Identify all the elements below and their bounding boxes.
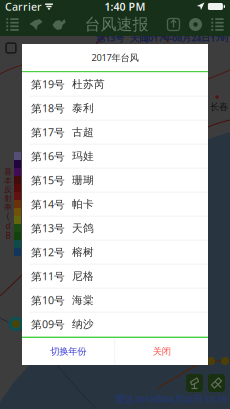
button[interactable]: 关闭 xyxy=(115,338,208,365)
staticText: ( xyxy=(7,211,9,222)
button[interactable]: 第11号 xyxy=(22,265,208,289)
staticText: 基 xyxy=(4,167,12,177)
staticText: 古超 xyxy=(72,126,94,139)
staticText: 1:40 PM xyxy=(104,0,145,14)
staticText: 珊瑚 xyxy=(72,174,94,187)
staticText: Carrier xyxy=(5,0,42,14)
button[interactable]: Typhoon xyxy=(188,17,203,32)
button[interactable]: 第17号 xyxy=(22,121,208,145)
staticText: 2017年08月24日17时 xyxy=(143,32,229,44)
staticText: 本 xyxy=(4,176,12,186)
staticText: 反 xyxy=(4,185,12,194)
staticText: 纳沙 xyxy=(72,318,94,331)
staticText: 第17号 xyxy=(31,125,65,139)
button[interactable]: 第09号 xyxy=(22,313,208,337)
button[interactable]: 切换年份 xyxy=(22,338,115,365)
button[interactable]: Radar xyxy=(186,374,203,392)
button[interactable]: List xyxy=(5,17,20,32)
staticText: 关闭 xyxy=(153,346,171,357)
button[interactable]: 第15号 xyxy=(22,169,208,193)
staticText: 第10号 xyxy=(31,293,65,307)
button[interactable]: Menu xyxy=(210,17,225,32)
staticText: 切换年份 xyxy=(50,346,86,357)
button[interactable]: Satellite xyxy=(208,374,225,392)
staticText: 第11号 xyxy=(31,269,65,283)
staticText: 第09号 xyxy=(31,317,65,331)
staticText: 2017年台风 xyxy=(91,51,138,64)
staticText: 天鸽 xyxy=(72,222,94,235)
staticText: 30米/小时 xyxy=(143,58,192,72)
button[interactable]: 第19号 xyxy=(22,73,208,97)
button[interactable]: Map xyxy=(51,17,67,32)
button[interactable]: 第14号 xyxy=(22,193,208,217)
staticText: d xyxy=(5,221,10,231)
staticText: 第13号 天鸽 xyxy=(96,32,148,44)
staticText: 射 xyxy=(4,193,12,203)
button[interactable]: 第18号 xyxy=(22,97,208,121)
staticText: 第15号 xyxy=(31,173,65,187)
staticText: 第19号 xyxy=(31,77,65,91)
staticText: 第18号 xyxy=(31,101,65,115)
staticText: 第13号 xyxy=(31,221,65,235)
button[interactable]: 第13号 xyxy=(22,217,208,241)
staticText: 榕树 xyxy=(72,246,94,259)
staticText: B xyxy=(5,230,10,241)
staticText: 长春 xyxy=(210,101,228,113)
staticText: 杜苏芮 xyxy=(72,78,105,91)
staticText: 台风速报 xyxy=(84,15,148,34)
button[interactable]: Share xyxy=(166,17,181,32)
staticText: 第12号 xyxy=(31,245,65,259)
staticText: 尼格 xyxy=(72,270,94,283)
staticText: 海棠 xyxy=(72,294,94,307)
staticText: 泰利 xyxy=(72,102,94,115)
staticText: 雷达 2018年04月22日 13:19 xyxy=(115,393,227,405)
staticText: 第16号 xyxy=(31,149,65,163)
button[interactable]: Logo xyxy=(28,17,44,32)
staticText: 率 xyxy=(4,202,12,212)
button[interactable]: 第10号 xyxy=(22,289,208,313)
button[interactable]: 第12号 xyxy=(22,241,208,265)
button[interactable]: 第16号 xyxy=(22,145,208,169)
staticText: 第14号 xyxy=(31,197,65,211)
staticText: 帕卡 xyxy=(72,198,94,211)
staticText: 玛娃 xyxy=(72,150,94,163)
